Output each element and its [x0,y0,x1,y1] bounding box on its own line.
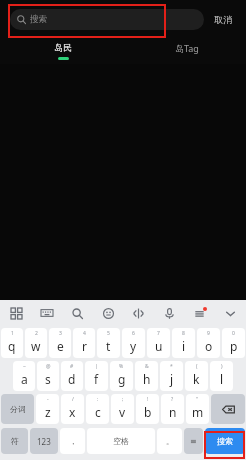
staticText: / [72,396,74,403]
button[interactable]: ~ [13,361,35,391]
staticText: n [169,404,177,420]
button[interactable]: Search [66,302,88,324]
button[interactable]: 取消 [210,9,236,30]
staticText: 取消 [214,14,232,25]
staticText: ≡ [190,437,197,446]
staticText: 3 [59,330,62,337]
button[interactable]: Keyboard layout [36,302,58,324]
button[interactable]: 7 [147,328,170,358]
staticText: @ [46,363,51,370]
staticText: ， [69,436,77,446]
staticText: m [192,404,204,420]
staticText: 5 [107,330,110,337]
staticText: 123 [37,436,51,447]
button[interactable]: 。 [157,428,182,454]
staticText: u [155,338,163,354]
button[interactable]: @ [37,361,59,391]
button[interactable]: 1 [1,328,23,358]
staticText: j [170,371,174,387]
button[interactable]: | [85,361,108,391]
staticText: " [196,396,199,403]
staticText: r [82,338,87,354]
button[interactable]: ( [185,361,208,391]
button[interactable]: 岛Tag [169,42,205,54]
staticText: f [94,371,99,387]
staticText: k [193,371,200,387]
button[interactable]: Backspace [211,394,245,424]
button[interactable]: 搜索 [10,9,204,30]
button[interactable]: Settings [188,302,210,324]
staticText: t [106,338,111,354]
staticText: l [220,371,224,387]
button[interactable]: 8 [172,328,195,358]
button[interactable]: / [61,394,84,424]
button[interactable]: ≡ [184,428,203,454]
staticText: % [119,363,124,370]
button[interactable]: Hide keyboard [219,302,241,324]
staticText: g [118,371,126,387]
button[interactable]: 0 [222,328,245,358]
button[interactable]: & [135,361,158,391]
staticText: 4 [83,330,86,337]
staticText: : [97,396,99,403]
button[interactable]: 2 [25,328,47,358]
staticText: ? [171,396,174,403]
staticText: 8 [182,330,185,337]
button[interactable]: Emoji [97,302,119,324]
button[interactable]: % [110,361,133,391]
staticText: c [95,404,101,420]
staticText: 1 [11,330,14,337]
staticText: i [182,338,186,354]
button[interactable]: 4 [73,328,95,358]
staticText: x [69,404,76,420]
button[interactable]: ! [136,394,159,424]
button[interactable]: 符 [1,428,28,454]
button[interactable]: 空格 [87,428,155,454]
staticText: 搜索 [30,14,47,25]
button[interactable]: * [160,361,183,391]
staticText: e [57,338,64,354]
staticText: 分词 [10,404,26,414]
button[interactable]: - [36,394,59,424]
button[interactable]: 岛民 [48,42,78,60]
staticText: * [170,363,173,370]
staticText: h [143,371,151,387]
button[interactable]: ， [60,428,85,454]
staticText: z [45,404,51,420]
staticText: | [95,363,98,370]
staticText: 。 [166,436,174,446]
staticText: 岛民 [54,42,72,53]
staticText: a [21,371,28,387]
button[interactable]: : [86,394,109,424]
button[interactable]: Apps [5,302,27,324]
button[interactable]: # [61,361,83,391]
staticText: ; [122,396,124,403]
staticText: ! [147,396,149,403]
staticText: 空格 [113,436,129,446]
staticText: o [205,338,213,354]
staticText: 7 [157,330,160,337]
button[interactable]: 分词 [1,394,34,424]
staticText: - [47,396,49,403]
staticText: q [8,338,16,354]
button[interactable]: ; [111,394,134,424]
button[interactable]: 3 [49,328,71,358]
button[interactable]: ) [210,361,233,391]
button[interactable]: Voice input [158,302,180,324]
button[interactable]: Translate [127,302,149,324]
staticText: 岛Tag [175,42,199,54]
button[interactable]: 123 [30,428,58,454]
button[interactable]: 6 [122,328,145,358]
button[interactable]: ? [161,394,184,424]
button[interactable]: " [186,394,209,424]
staticText: s [45,371,51,387]
staticText: 符 [11,436,19,446]
staticText: ) [221,363,223,370]
button[interactable]: 9 [197,328,220,358]
staticText: v [119,404,126,420]
button[interactable]: 5 [97,328,120,358]
button[interactable]: 搜索 [205,428,245,454]
staticText: b [144,404,152,420]
staticText: ~ [23,363,26,370]
staticText: 0 [232,330,235,337]
